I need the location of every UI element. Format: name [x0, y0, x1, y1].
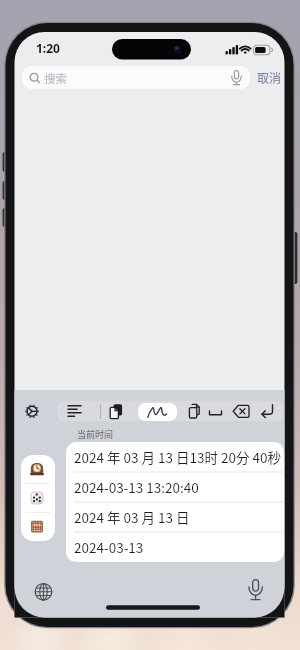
staticText: 1:20	[36, 40, 60, 56]
button[interactable]	[21, 455, 55, 484]
staticText: 取消	[257, 69, 282, 86]
button[interactable]	[22, 401, 42, 421]
button[interactable]	[108, 401, 128, 421]
button[interactable]	[64, 401, 85, 422]
button[interactable]	[230, 401, 252, 423]
button[interactable]: 取消	[254, 66, 284, 89]
staticText: 2024-03-13 13:20:40	[74, 477, 199, 497]
button[interactable]	[138, 403, 177, 421]
button[interactable]	[21, 484, 55, 513]
button[interactable]	[256, 401, 278, 423]
button[interactable]: 搜索	[22, 66, 250, 89]
staticText: 2024 年 03 月 13 日	[74, 507, 190, 527]
button[interactable]	[243, 577, 268, 602]
button[interactable]	[31, 579, 56, 604]
button[interactable]: 2024-03-13 13:20:40	[66, 472, 284, 502]
button[interactable]	[185, 401, 205, 421]
button[interactable]: 2024-03-13	[66, 532, 284, 562]
button[interactable]	[205, 401, 226, 422]
staticText: 搜索	[44, 70, 67, 87]
staticText: 2024-03-13	[74, 537, 144, 557]
button[interactable]: 2024 年 03 月 13 日	[66, 502, 284, 532]
staticText: 当前时间	[77, 428, 114, 441]
button[interactable]: 2024 年 03 月 13 日13时 20分 40秒	[66, 442, 284, 472]
staticText: 2024 年 03 月 13 日13时 20分 40秒	[74, 447, 282, 467]
button[interactable]	[21, 512, 55, 541]
